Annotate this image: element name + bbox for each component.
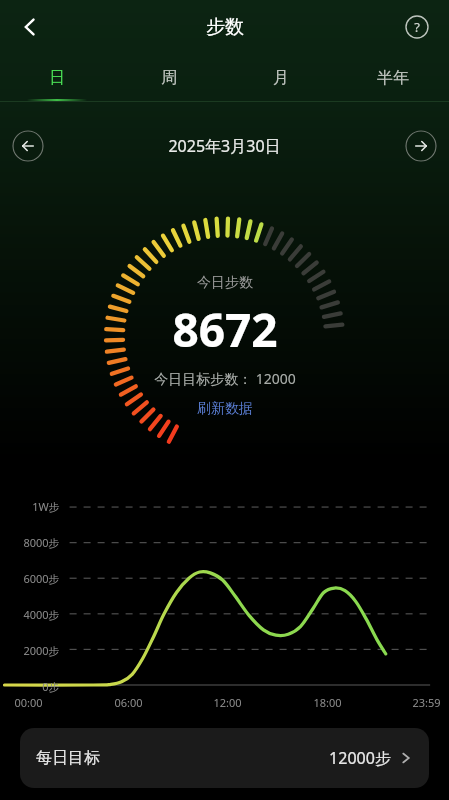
staticText: 步数 [206,15,244,39]
button[interactable]: 每日目标 [20,728,429,788]
staticText: 2025年3月30日 [168,135,281,157]
staticText: 18:00 [313,695,342,710]
staticText: 4000步 [23,607,60,622]
button[interactable]: 日 [0,54,113,101]
button[interactable]: Next day [405,130,437,162]
button[interactable]: 周 [113,54,225,101]
staticText: 6000步 [23,571,60,586]
staticText: 今日步数 [197,274,253,292]
staticText: ? [414,18,420,36]
button[interactable]: Back [8,5,52,49]
staticText: 2000步 [23,643,60,658]
staticText: 8672 [172,298,278,361]
button[interactable]: Help [395,5,439,49]
staticText: 12:00 [213,695,242,710]
button[interactable]: Previous day [12,130,44,162]
staticText: 日 [49,68,65,88]
button[interactable]: 刷新数据 [191,398,259,420]
staticText: 每日目标 [36,748,100,768]
staticText: 今日目标步数： 12000 [154,369,296,388]
staticText: 00:00 [14,695,43,710]
staticText: 1W步 [32,499,60,514]
staticText: 12000步 [329,747,391,769]
staticText: 半年 [377,68,409,88]
staticText: 23:59 [412,695,441,710]
staticText: 0步 [42,679,60,694]
staticText: 月 [273,68,289,88]
button[interactable]: 半年 [337,54,449,101]
button[interactable]: 月 [225,54,337,101]
staticText: 06:00 [114,695,143,710]
staticText: 8000步 [23,535,60,550]
staticText: 刷新数据 [197,400,253,418]
staticText: 周 [161,68,177,88]
